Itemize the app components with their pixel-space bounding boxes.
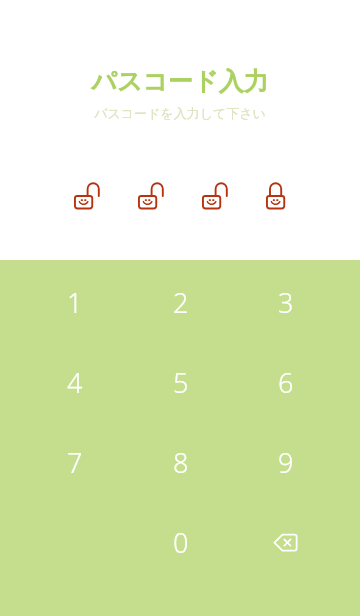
button[interactable]: 0 — [128, 502, 233, 582]
button[interactable]: Delete — [233, 502, 338, 582]
button[interactable]: 5 — [128, 342, 233, 422]
staticText: 6 — [278, 364, 294, 401]
staticText: パスコードを入力して下さい — [94, 105, 266, 121]
staticText: 9 — [278, 444, 294, 481]
staticText: 5 — [173, 364, 189, 401]
button[interactable]: 2 — [128, 262, 233, 342]
staticText: 0 — [173, 524, 189, 561]
other: Passcode progress — [0, 184, 360, 211]
staticText: 7 — [67, 444, 83, 481]
button[interactable]: 7 — [22, 422, 128, 502]
staticText: 1 — [67, 284, 83, 321]
staticText: 2 — [173, 284, 189, 321]
staticText: 8 — [173, 444, 189, 481]
button[interactable]: 4 — [22, 342, 128, 422]
staticText: 3 — [278, 284, 294, 321]
button[interactable]: 1 — [22, 262, 128, 342]
button[interactable]: 3 — [233, 262, 338, 342]
button[interactable]: 9 — [233, 422, 338, 502]
button[interactable]: 6 — [233, 342, 338, 422]
button[interactable]: 8 — [128, 422, 233, 502]
staticText: 4 — [67, 364, 83, 401]
staticText: パスコード入力 — [91, 66, 269, 97]
